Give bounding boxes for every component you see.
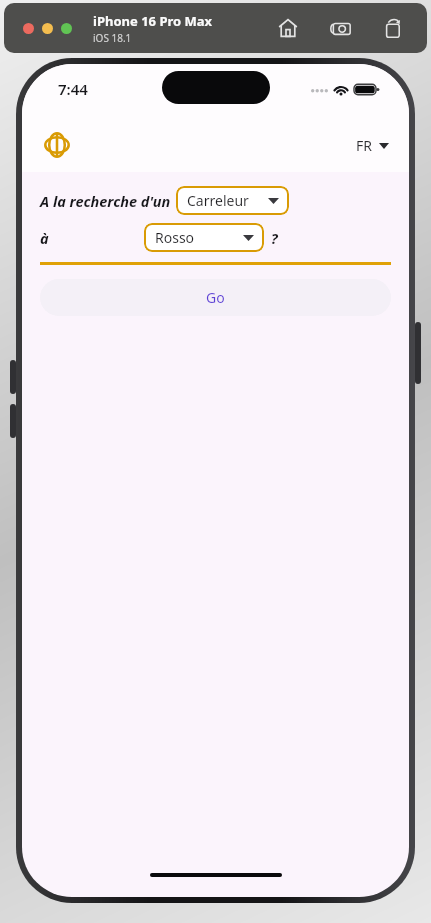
staticText: 7:44	[58, 79, 88, 99]
staticText: ?	[271, 228, 278, 248]
button[interactable]: Go	[40, 279, 391, 316]
button[interactable]: Volume up	[10, 360, 16, 394]
button[interactable]: Home	[275, 15, 301, 41]
button[interactable]: Maximize	[61, 23, 72, 34]
button[interactable]: Carreleur	[176, 186, 289, 215]
button[interactable]: Screenshot	[327, 15, 353, 41]
staticText: Rosso	[155, 228, 195, 247]
button[interactable]: Power	[415, 322, 421, 384]
button[interactable]: Home logo	[36, 124, 78, 166]
staticText: iOS 18.1	[93, 31, 132, 45]
staticText: Carreleur	[187, 191, 249, 210]
staticText: Go	[206, 288, 225, 307]
button[interactable]: Volume down	[10, 404, 16, 438]
staticText: iPhone 16 Pro Max	[93, 12, 213, 30]
button[interactable]: Rotate	[379, 15, 405, 41]
button[interactable]: Language FR	[356, 136, 389, 155]
button[interactable]: Rosso	[144, 223, 264, 252]
button[interactable]: Close	[23, 23, 34, 34]
staticText: A la recherche d'un	[40, 191, 171, 211]
button[interactable]: Minimize	[42, 23, 53, 34]
staticText: FR	[356, 136, 372, 155]
staticText: à	[40, 228, 49, 248]
